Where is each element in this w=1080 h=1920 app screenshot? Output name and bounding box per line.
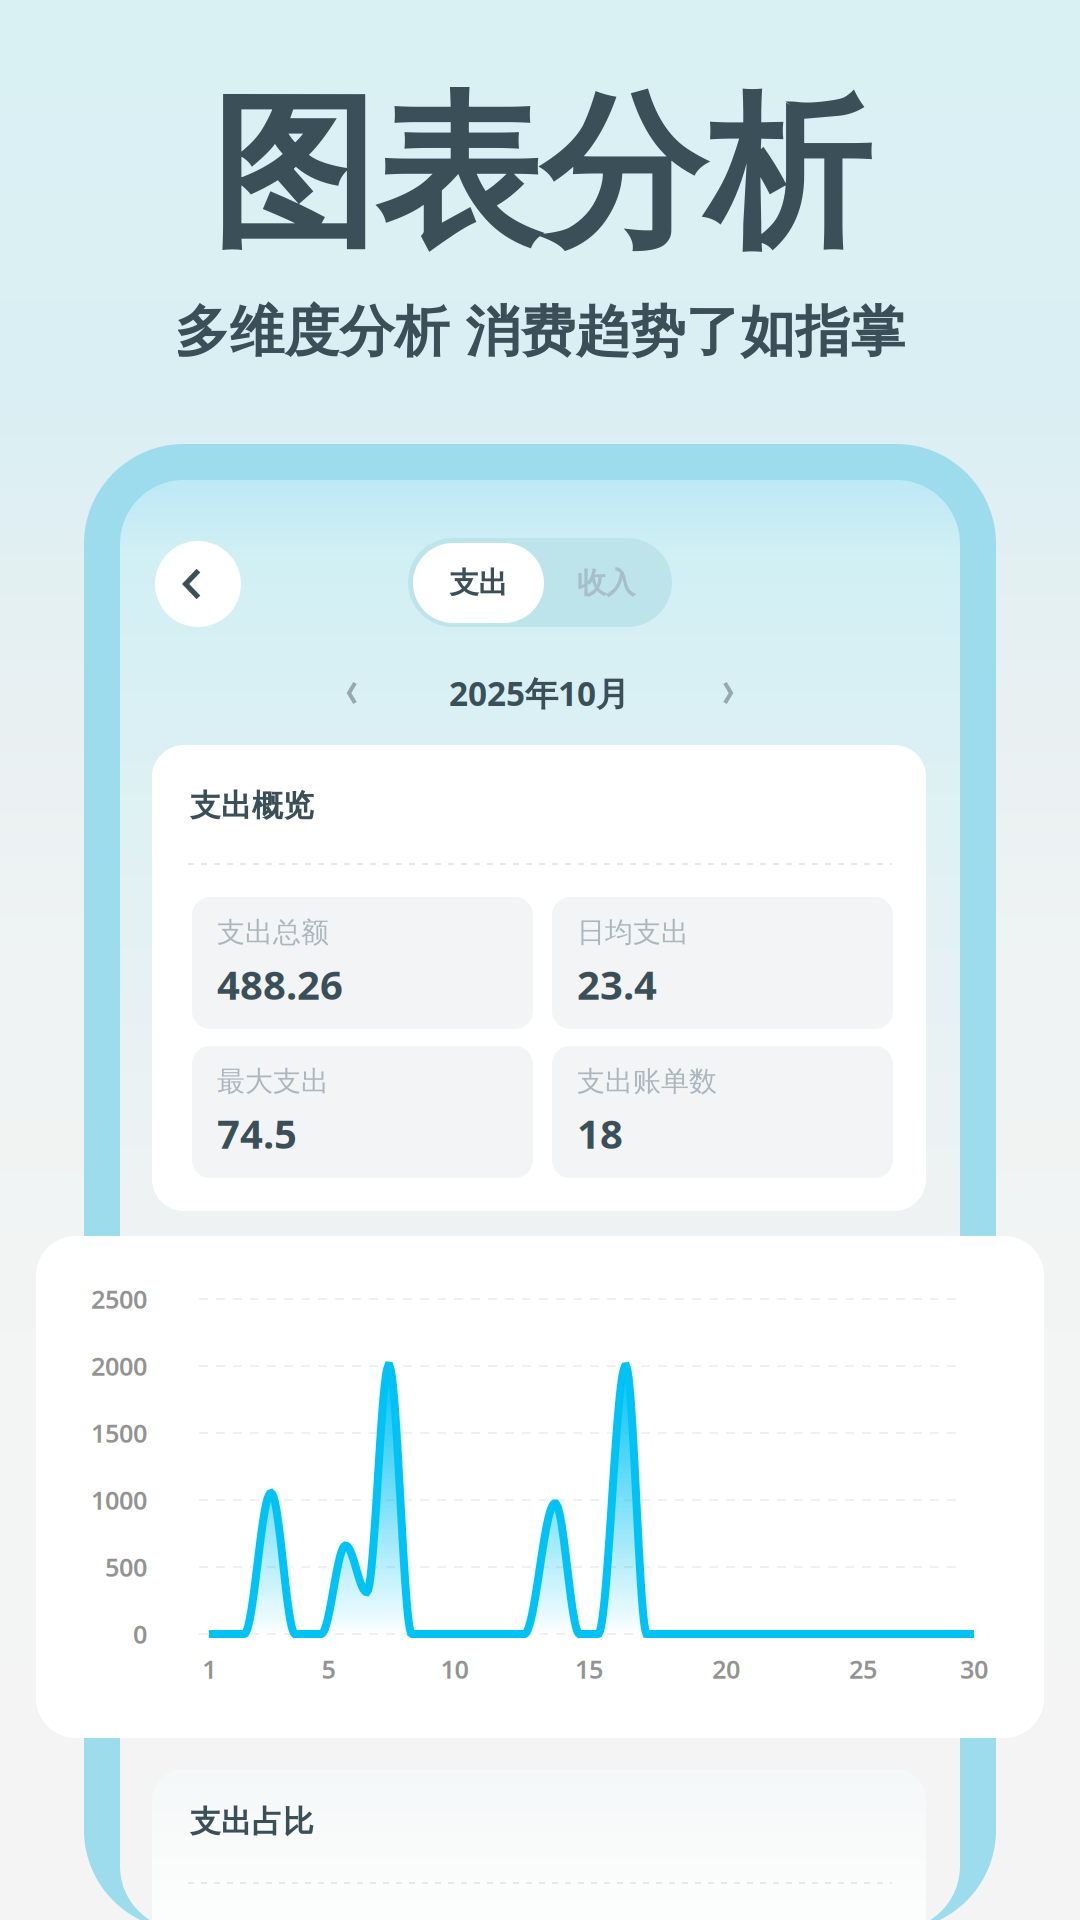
button[interactable]: 收入 <box>544 543 668 623</box>
staticText: 1000 <box>91 1483 147 1517</box>
staticText: 2025年10月 <box>449 671 629 715</box>
staticText: 支出占比 <box>190 1803 314 1841</box>
button[interactable]: Next month <box>700 665 756 721</box>
staticText: 488.26 <box>217 958 343 1011</box>
staticText: 支出账单数 <box>577 1064 717 1099</box>
staticText: 最大支出 <box>217 1064 329 1099</box>
staticText: 收入 <box>577 565 635 601</box>
staticText: 多维度分析 消费趋势了如指掌 <box>174 298 905 365</box>
staticText: 2500 <box>91 1282 147 1316</box>
staticText: 20 <box>712 1652 740 1686</box>
button[interactable]: Back <box>155 541 241 627</box>
staticText: 18 <box>577 1107 623 1160</box>
button[interactable]: Previous month <box>324 665 380 721</box>
staticText: 15 <box>575 1652 603 1686</box>
staticText: 30 <box>960 1652 988 1686</box>
staticText: 支出总额 <box>217 915 329 950</box>
staticText: 支出 <box>449 565 507 601</box>
staticText: 5 <box>321 1652 335 1686</box>
staticText: 日均支出 <box>577 915 689 950</box>
staticText: 图表分析 <box>210 73 870 276</box>
staticText: 74.5 <box>217 1107 297 1160</box>
button[interactable]: 支出 <box>413 543 544 623</box>
staticText: 1500 <box>91 1416 147 1450</box>
staticText: 1 <box>202 1652 216 1686</box>
staticText: 23.4 <box>577 958 657 1011</box>
staticText: 支出概览 <box>190 787 314 825</box>
staticText: 2000 <box>91 1349 147 1383</box>
staticText: 0 <box>133 1617 147 1651</box>
staticText: 10 <box>440 1652 468 1686</box>
staticText: 500 <box>105 1550 147 1584</box>
staticText: 25 <box>849 1652 877 1686</box>
